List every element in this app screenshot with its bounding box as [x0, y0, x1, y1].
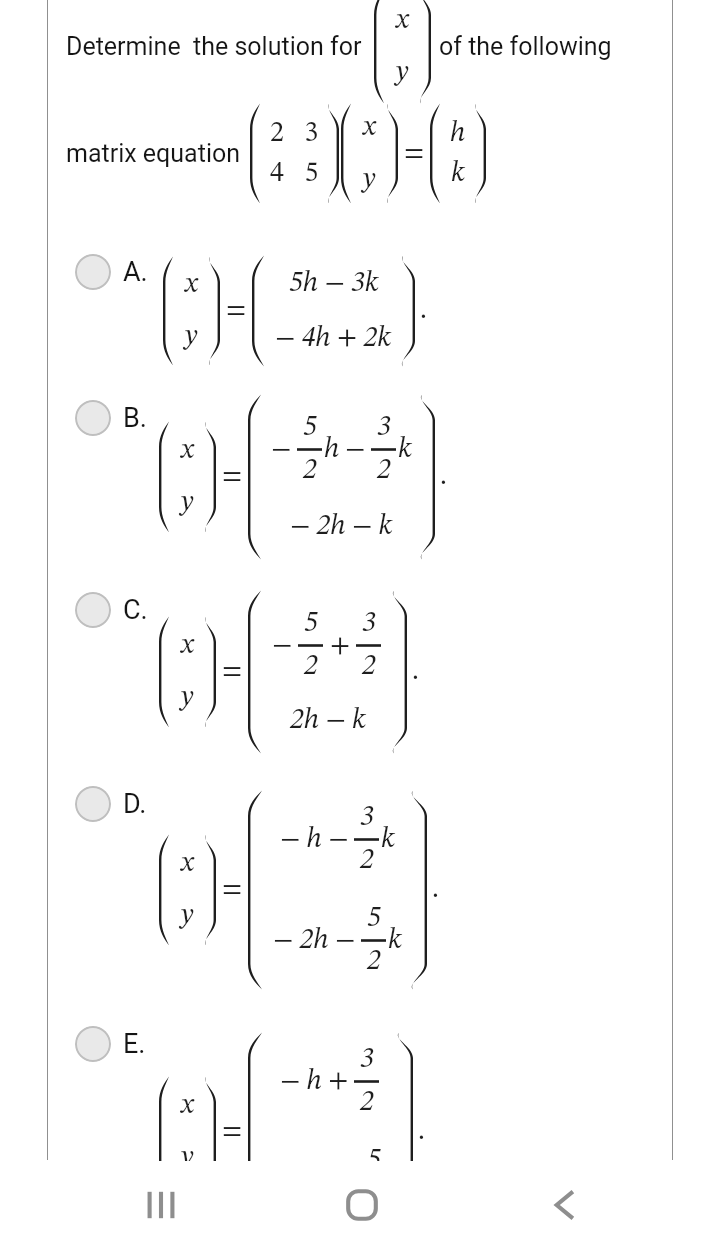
button[interactable]: E. — [75, 1026, 146, 1062]
staticText: Determine the solution for — [66, 32, 362, 61]
staticText: x — [181, 632, 194, 660]
staticText: 2 — [377, 457, 391, 485]
button[interactable]: D. — [75, 786, 147, 822]
staticText: . — [412, 658, 419, 686]
staticText: . — [440, 463, 447, 491]
staticText: y — [181, 489, 194, 517]
staticText: E. — [123, 1028, 146, 1060]
staticText: 5 — [367, 1147, 381, 1175]
button[interactable]: C. — [75, 592, 148, 628]
staticText: 3 — [360, 1046, 374, 1074]
staticText: B. — [123, 402, 147, 434]
staticText: y — [181, 1144, 194, 1172]
staticText: x — [181, 850, 194, 878]
staticText: − 4h + 2k — [275, 325, 392, 353]
staticText: of the following — [439, 32, 612, 61]
staticText: = — [226, 297, 247, 325]
staticText: − — [345, 436, 366, 464]
staticText: 2 3 — [270, 120, 319, 148]
staticText: 3 — [377, 414, 391, 442]
staticText: 3 — [360, 804, 374, 832]
staticText: . — [418, 1118, 425, 1146]
staticText: D. — [123, 788, 147, 820]
staticText: + — [330, 632, 351, 660]
staticText: − — [271, 436, 292, 464]
staticText: 3 — [362, 610, 376, 638]
staticText: k — [398, 436, 412, 464]
staticText: − 2h + — [273, 1169, 356, 1197]
staticText: k — [388, 927, 402, 955]
staticText: y — [181, 902, 194, 930]
staticText: x — [363, 114, 376, 142]
staticText: y — [363, 166, 376, 194]
button[interactable]: Recent apps — [121, 1160, 201, 1250]
staticText: matrix equation — [66, 139, 241, 168]
staticText: 5 — [303, 414, 317, 442]
button[interactable]: A. — [75, 254, 148, 290]
staticText: . — [420, 297, 427, 325]
staticText: 4 5 — [270, 160, 319, 188]
staticText: x — [181, 437, 194, 465]
staticText: − h − — [280, 826, 349, 854]
staticText: h — [324, 436, 340, 464]
staticText: = — [222, 1118, 243, 1146]
staticText: − 2h − k — [290, 513, 393, 541]
staticText: 2 — [360, 847, 374, 875]
staticText: = — [404, 140, 425, 168]
staticText: = — [222, 463, 243, 491]
staticText: A. — [123, 256, 148, 288]
staticText: y — [181, 684, 194, 712]
staticText: 2h − k — [290, 707, 366, 735]
staticText: x — [181, 1092, 194, 1120]
staticText: = — [222, 658, 243, 686]
button[interactable]: B. — [75, 400, 147, 436]
staticText: 5 — [304, 610, 318, 638]
staticText: k — [381, 826, 395, 854]
staticText: C. — [123, 594, 148, 626]
button[interactable]: Home — [322, 1160, 402, 1250]
staticText: 2 — [362, 653, 376, 681]
staticText: x — [185, 271, 198, 299]
staticText: 2 — [360, 1089, 374, 1117]
staticText: 5 — [367, 905, 381, 933]
staticText: − — [272, 632, 293, 660]
staticText: = — [222, 876, 243, 904]
staticText: 2 — [303, 457, 317, 485]
staticText: h — [450, 120, 466, 148]
staticText: − h + — [280, 1068, 349, 1096]
staticText: − 2h − — [273, 927, 356, 955]
staticText: 5h − 3k — [289, 270, 379, 298]
staticText: 2 — [367, 948, 381, 976]
staticText: k — [451, 160, 465, 188]
staticText: . — [432, 876, 439, 904]
staticText: y — [396, 59, 409, 87]
button[interactable]: Back — [524, 1160, 604, 1250]
staticText: x — [396, 7, 409, 35]
staticText: 2 — [304, 653, 318, 681]
staticText: 2 — [367, 1190, 381, 1218]
staticText: y — [185, 323, 198, 351]
